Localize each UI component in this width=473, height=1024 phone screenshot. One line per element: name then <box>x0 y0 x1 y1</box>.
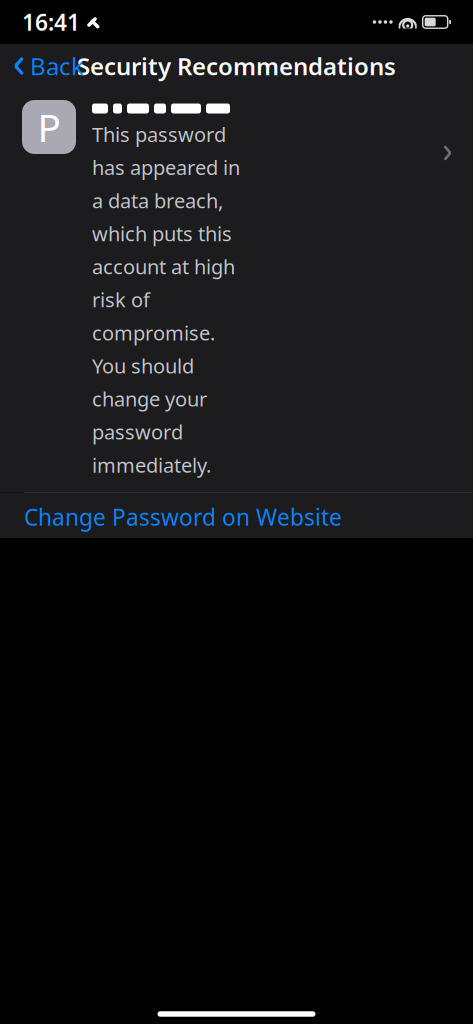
staticText: This password has appeared in a data bre… <box>92 121 240 478</box>
staticText: Back <box>30 50 84 82</box>
button[interactable]: P <box>0 88 473 492</box>
staticText: Change Password on Website <box>24 502 342 532</box>
button[interactable]: Change Password on Website <box>0 493 473 541</box>
button[interactable]: Back <box>0 44 84 88</box>
button[interactable]: Change Password on Website <box>0 969 473 1017</box>
staticText: Security Recommendations <box>77 50 396 82</box>
staticText: P <box>37 101 60 153</box>
staticText: 16:41 <box>22 7 80 37</box>
